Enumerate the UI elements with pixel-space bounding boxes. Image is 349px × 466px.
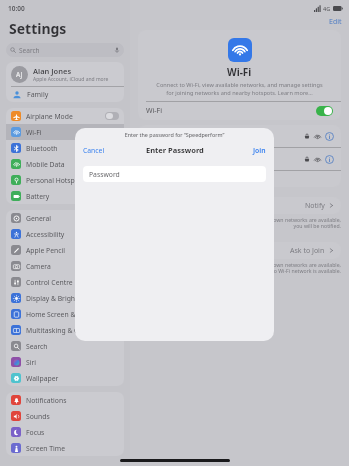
staticText: Known networks will be joined automatica… xyxy=(138,261,341,275)
staticText: Multitasking & Gestures xyxy=(26,326,103,335)
staticText: Known networks will be joined automatica… xyxy=(138,216,341,230)
staticText: 4G xyxy=(323,5,331,12)
button[interactable]: Network information xyxy=(325,155,334,164)
staticText: Ask to Join xyxy=(290,246,325,256)
staticText: Wi-Fi xyxy=(26,128,42,137)
button[interactable]: Network information xyxy=(138,125,341,147)
button[interactable]: Search xyxy=(6,43,124,57)
button[interactable]: Control Centre xyxy=(6,274,124,290)
button[interactable]: Network information xyxy=(138,148,341,170)
staticText: Enter Password xyxy=(146,145,204,155)
button[interactable]: Multitasking & Gestures xyxy=(6,322,124,338)
staticText: Mobile Data xyxy=(26,160,65,169)
button[interactable]: Password xyxy=(83,166,266,182)
button[interactable]: Camera xyxy=(6,258,124,274)
button[interactable]: Airplane Mode xyxy=(6,108,124,124)
button[interactable]: AJ xyxy=(6,62,124,86)
button[interactable]: Wi-Fi xyxy=(138,102,341,120)
staticText: Sounds xyxy=(26,412,50,421)
staticText: Enter the password for “Speedperform” xyxy=(75,131,274,138)
staticText: Password xyxy=(89,170,120,179)
staticText: Battery xyxy=(26,192,50,201)
staticText: Wallpaper xyxy=(26,374,59,383)
staticText: Connect to Wi-Fi, view available network… xyxy=(156,81,323,97)
staticText: Apple Account, iCloud and more xyxy=(33,76,109,83)
button[interactable]: Bluetooth xyxy=(6,140,124,156)
staticText: General xyxy=(26,214,52,223)
staticText: 10:00 xyxy=(8,4,25,13)
button[interactable]: Apple Pencil xyxy=(6,242,124,258)
staticText: Home Screen & App Library xyxy=(26,310,114,319)
staticText: Airplane Mode xyxy=(26,112,73,121)
button[interactable]: Notifications xyxy=(6,392,124,408)
staticText: Apple Pencil xyxy=(26,246,65,255)
staticText: Notify xyxy=(305,201,325,211)
button[interactable]: Join xyxy=(253,146,266,155)
button[interactable]: General xyxy=(6,210,124,226)
button[interactable]: Battery xyxy=(6,188,124,204)
staticText: Family xyxy=(27,90,49,100)
staticText: Control Centre xyxy=(26,278,73,287)
button[interactable]: Display & Brightness xyxy=(6,290,124,306)
staticText: Wi-Fi xyxy=(227,65,252,79)
button[interactable] xyxy=(138,171,341,187)
button[interactable]: Network information xyxy=(325,132,334,141)
staticText: Siri xyxy=(26,358,37,367)
button[interactable]: Home Screen & App Library xyxy=(6,306,124,322)
staticText: Display & Brightness xyxy=(26,294,93,303)
button[interactable]: Family xyxy=(6,87,124,102)
button[interactable]: Focus xyxy=(6,424,124,440)
button[interactable]: Personal Hotspot xyxy=(6,172,124,188)
button[interactable]: Sounds xyxy=(6,408,124,424)
staticText: AJ xyxy=(16,70,23,79)
staticText: Notifications xyxy=(26,396,67,405)
staticText: Wi-Fi xyxy=(146,106,163,116)
button[interactable]: Screen Time xyxy=(6,440,124,456)
staticText: Focus xyxy=(26,428,45,437)
button[interactable]: Wallpaper xyxy=(6,370,124,386)
button[interactable]: Siri xyxy=(6,354,124,370)
button[interactable]: Mobile Data xyxy=(6,156,124,172)
button[interactable]: Accessibility xyxy=(6,226,124,242)
staticText: Accessibility xyxy=(26,230,65,239)
staticText: Search xyxy=(26,342,48,351)
staticText: Settings xyxy=(9,19,67,38)
staticText: Screen Time xyxy=(26,444,66,453)
button[interactable]: Edit xyxy=(329,17,342,27)
button[interactable]: Ask to Join xyxy=(138,242,341,259)
button[interactable]: Search xyxy=(6,338,124,354)
button[interactable]: Cancel xyxy=(83,146,105,155)
button[interactable]: Wi-Fi xyxy=(6,124,124,140)
staticText: Personal Hotspot xyxy=(26,176,82,185)
staticText: Camera xyxy=(26,262,51,271)
button[interactable]: Notify xyxy=(138,197,341,214)
staticText: Bluetooth xyxy=(26,144,58,153)
staticText: Alan Jones xyxy=(33,66,72,76)
staticText: Search xyxy=(19,46,40,55)
